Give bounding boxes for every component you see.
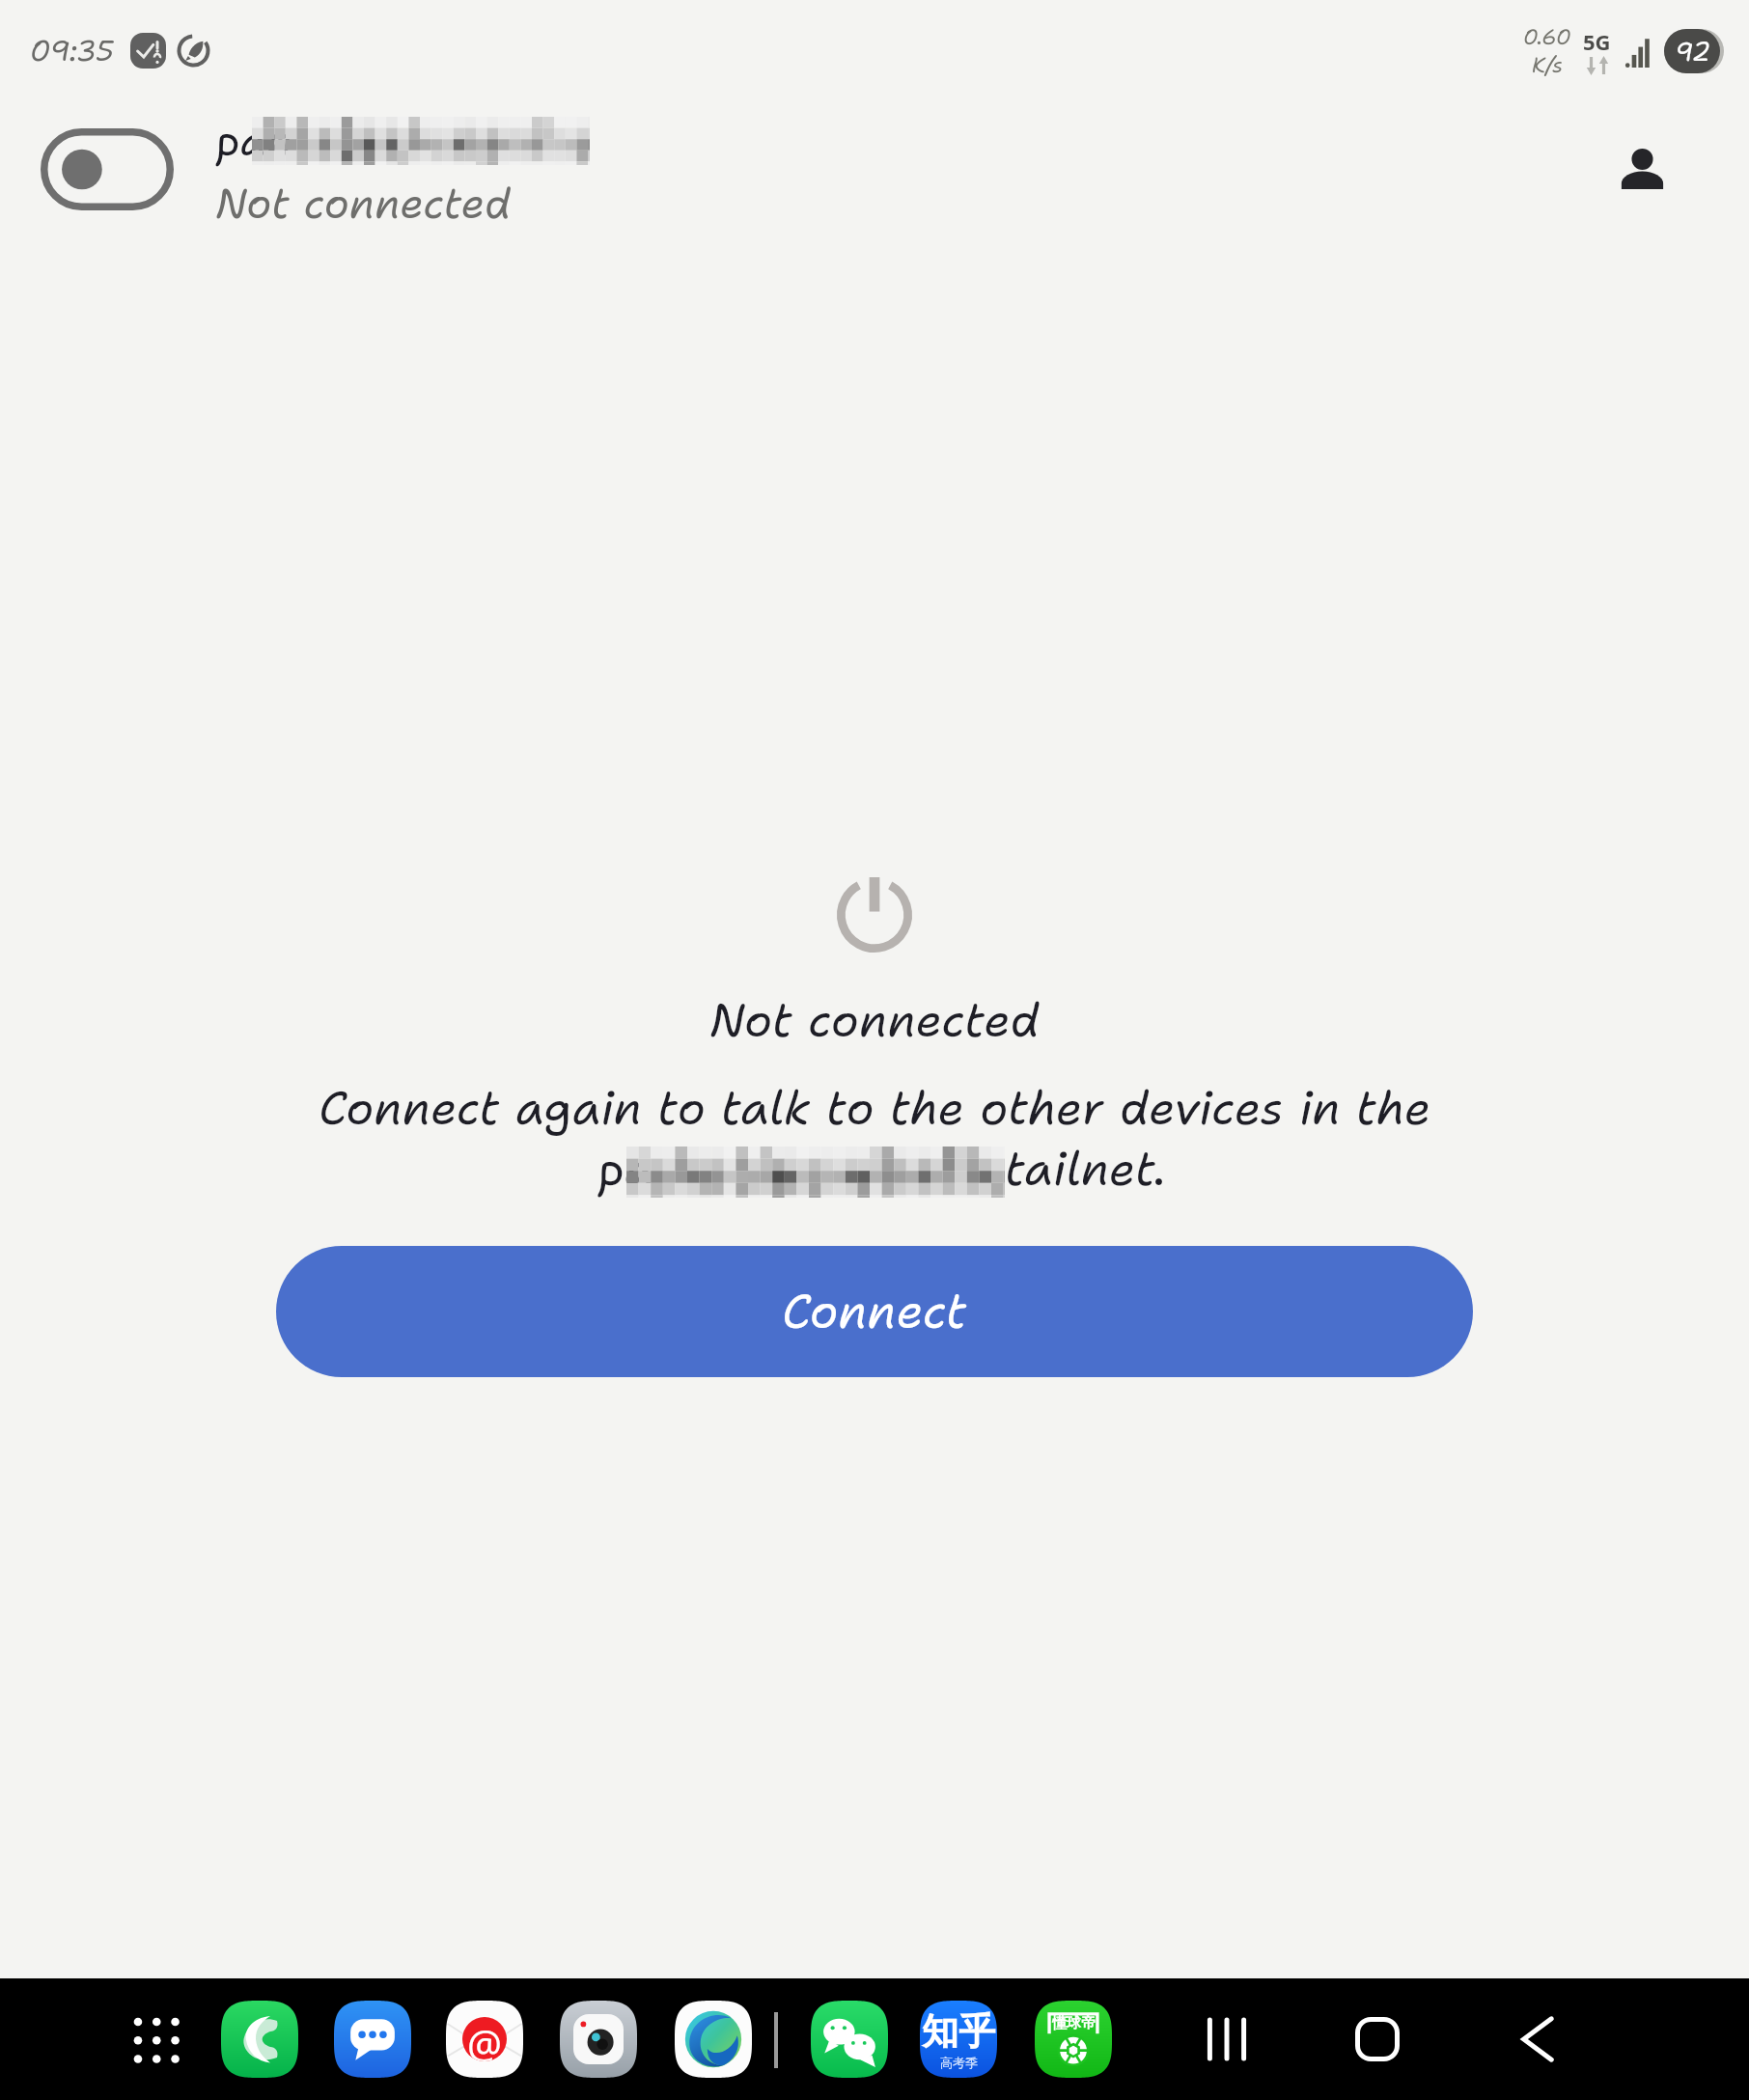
button[interactable]: Toggle connection [41, 128, 174, 210]
button[interactable]: Browser [657, 1983, 769, 2095]
button[interactable]: Connect [276, 1246, 1473, 1377]
button[interactable]: Back [1489, 1991, 1586, 2087]
staticText: 5G [1583, 27, 1611, 56]
staticText: 高考季 [940, 2055, 978, 2070]
button[interactable]: Phone [204, 1983, 316, 2095]
button[interactable]: Account [1596, 123, 1688, 215]
staticText: @ [467, 2017, 502, 2061]
staticText: Not connected [215, 176, 512, 232]
button[interactable]: Recent apps [1179, 1991, 1275, 2087]
staticText: 0.60 [1523, 23, 1571, 51]
button[interactable]: Camera [542, 1983, 654, 2095]
staticText: tailnet. [1005, 1138, 1167, 1200]
staticText: 09:35 [30, 31, 114, 69]
staticText: 知乎 [922, 2008, 995, 2055]
staticText: 92 [1675, 34, 1710, 69]
staticText: Not connected [709, 989, 1041, 1051]
staticText: 懂球帝 [1052, 2014, 1096, 2032]
button[interactable]: Messages [317, 1983, 429, 2095]
button[interactable]: Zhihu [902, 1983, 1014, 2095]
button[interactable]: Sports [1017, 1983, 1129, 2095]
staticText: K/s [1532, 51, 1564, 79]
button[interactable]: Email [429, 1983, 541, 2095]
button[interactable]: Apps [107, 1991, 204, 2087]
staticText: pa [598, 1138, 653, 1200]
staticText: Connect again to talk to the other devic… [319, 1077, 1431, 1139]
staticText: pan [216, 112, 293, 169]
button[interactable]: Home [1329, 1991, 1426, 2087]
staticText: Connect [782, 1280, 967, 1343]
button[interactable]: WeChat [793, 1983, 905, 2095]
